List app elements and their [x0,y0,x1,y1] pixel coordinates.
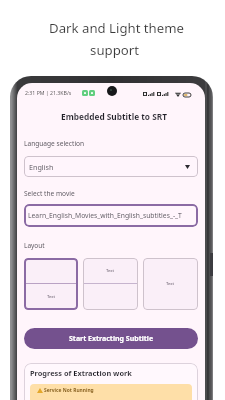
staticText: Learn_English_Movies_with_English_subtit… [28,211,182,220]
staticText: Text [166,281,175,287]
staticText: Select the movie [24,189,75,198]
button[interactable]: Learn_English_Movies_with_English_subtit… [24,204,198,227]
staticText: English [29,162,54,172]
button[interactable]: Text [83,258,138,310]
staticText: Embedded Subtitle to SRT [20,111,205,122]
button[interactable]: Start Extracting Subtitle [24,328,198,349]
staticText: Language selection [24,139,85,148]
staticText: Progress of Extraction work [30,368,132,378]
staticText: Layout [24,241,45,250]
button[interactable]: English [24,156,198,177]
staticText: Dark and Light theme [4,19,225,37]
staticText: Start Extracting Subtitle [69,334,154,344]
staticText: support [2,41,225,59]
staticText: Text [47,294,56,300]
staticText: Text [106,268,115,274]
button[interactable]: Text [143,258,198,310]
staticText: Service Not Running [44,387,94,394]
button[interactable]: Text [24,258,78,310]
staticText: 2:31 PM | 21.3KB/s [25,89,72,96]
